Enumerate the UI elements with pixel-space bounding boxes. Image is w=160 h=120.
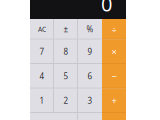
button[interactable]: 0 <box>30 113 78 120</box>
button[interactable]: 7 <box>30 39 54 64</box>
staticText: 4 <box>39 71 44 81</box>
button[interactable]: 9 <box>78 39 102 64</box>
button[interactable]: % <box>78 19 102 39</box>
button[interactable]: 8 <box>54 39 78 64</box>
staticText: 8 <box>63 46 68 57</box>
staticText: ± <box>63 24 68 34</box>
button[interactable]: 6 <box>78 64 102 88</box>
staticText: 9 <box>87 46 92 57</box>
staticText: AC <box>38 25 46 34</box>
button[interactable]: 3 <box>78 88 102 113</box>
staticText: 1 <box>39 95 44 106</box>
staticText: − <box>111 70 116 82</box>
staticText: 5 <box>63 71 68 81</box>
button[interactable]: 1 <box>30 88 54 113</box>
button[interactable]: 2 <box>54 88 78 113</box>
button[interactable]: 5 <box>54 64 78 88</box>
staticText: + <box>111 95 116 107</box>
staticText: 3 <box>87 95 92 106</box>
button[interactable]: + <box>102 88 126 113</box>
button[interactable]: 4 <box>30 64 54 88</box>
button[interactable]: × <box>102 39 126 64</box>
staticText: 0 <box>101 0 112 17</box>
staticText: × <box>111 46 116 58</box>
button[interactable]: ± <box>54 19 78 39</box>
staticText: % <box>86 24 93 34</box>
button[interactable]: ÷ <box>102 19 126 39</box>
staticText: ÷ <box>111 23 116 35</box>
staticText: 2 <box>63 95 68 106</box>
button[interactable]: AC <box>30 19 54 39</box>
button[interactable]: − <box>102 64 126 88</box>
staticText: 6 <box>87 71 92 81</box>
staticText: 7 <box>39 46 44 57</box>
